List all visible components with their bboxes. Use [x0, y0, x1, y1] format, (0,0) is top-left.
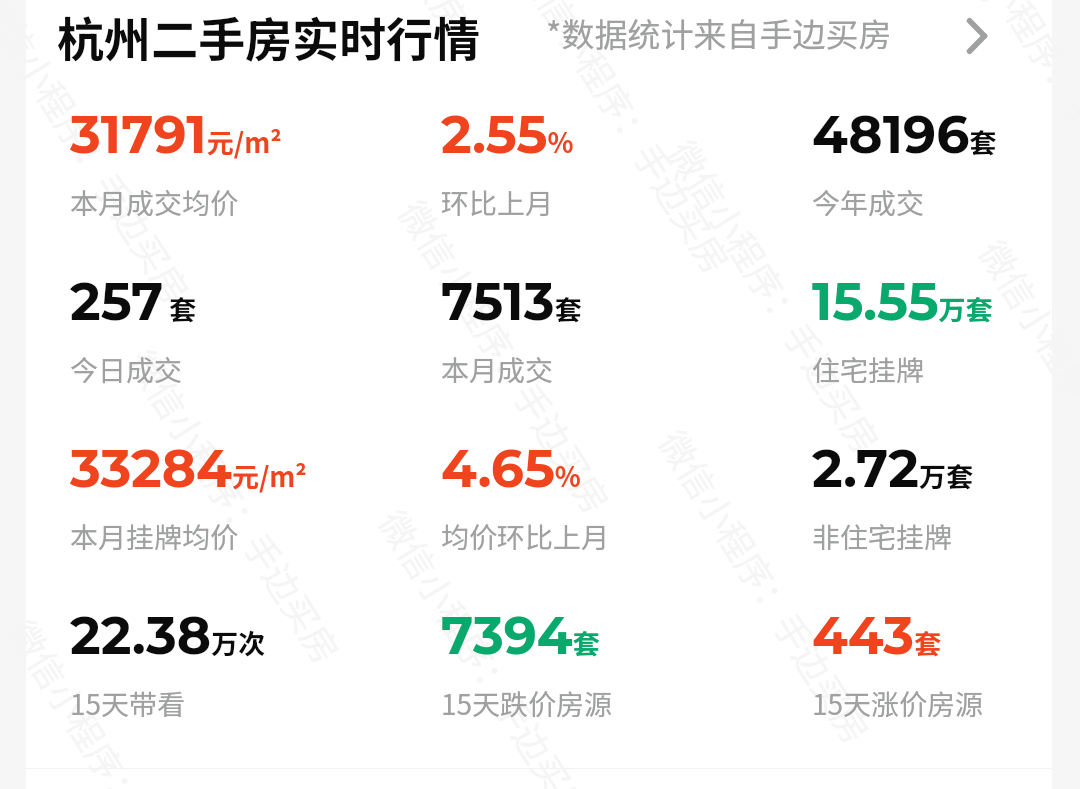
staticText: 15天跌价房源: [441, 683, 613, 724]
staticText: 微信小程序：手边买房: [389, 189, 624, 523]
button[interactable]: 2.55%: [441, 103, 812, 270]
button[interactable]: 查看详情: [946, 5, 1008, 67]
button[interactable]: 257 套: [70, 270, 441, 437]
staticText: 15天带看: [70, 683, 186, 724]
staticText: 今年成交: [812, 182, 925, 223]
button[interactable]: 7513套: [441, 270, 812, 437]
button[interactable]: 2.72万套: [812, 437, 1052, 604]
staticText: 微信小程序：手边买房: [0, 0, 204, 313]
staticText: 2.55%: [441, 103, 574, 166]
staticText: 微信小程序：手边买房: [649, 419, 884, 753]
button[interactable]: 7394套: [441, 604, 812, 771]
button[interactable]: 443套: [812, 604, 1052, 771]
staticText: 48196套: [812, 103, 997, 166]
staticText: 非住宅挂牌: [812, 516, 953, 557]
staticText: 微信小程序：手边买房: [0, 609, 234, 789]
staticText: 今日成交: [70, 349, 183, 390]
staticText: 22.38万次: [70, 604, 266, 667]
staticText: 微信小程序：手边买房: [249, 0, 484, 43]
staticText: 7513套: [441, 270, 582, 333]
button[interactable]: 33284元/m²: [70, 437, 441, 604]
staticText: 微信小程序：手边买房: [119, 339, 354, 673]
staticText: 4.65%: [441, 437, 581, 500]
staticText: 环比上月: [441, 182, 554, 223]
staticText: 443套: [812, 604, 942, 667]
staticText: 本月成交: [441, 349, 554, 390]
staticText: 15天涨价房源: [812, 683, 984, 724]
staticText: 7394套: [441, 604, 600, 667]
staticText: 均价环比上月: [441, 516, 610, 557]
staticText: 住宅挂牌: [812, 349, 925, 390]
button[interactable]: 15.55万套: [812, 270, 1052, 437]
staticText: 微信小程序：手边买房: [659, 129, 894, 463]
staticText: 本月挂牌均价: [70, 516, 239, 557]
button[interactable]: 杭州二手房实时行情: [26, 0, 1052, 72]
staticText: 15.55万套: [812, 270, 993, 333]
staticText: 微信小程序：手边买房: [509, 0, 744, 283]
staticText: *数据统计来自手边买房: [546, 9, 892, 57]
staticText: 33284元/m²: [70, 437, 307, 500]
button[interactable]: 4.65%: [441, 437, 812, 604]
staticText: 31791元/m²: [70, 103, 282, 166]
staticText: 杭州二手房实时行情: [57, 2, 480, 70]
button[interactable]: 22.38万次: [70, 604, 441, 771]
staticText: 257 套: [70, 270, 196, 333]
staticText: 微信小程序：手边买房: [369, 499, 604, 789]
button[interactable]: 31791元/m²: [70, 103, 441, 270]
staticText: 微信小程序：手边买房: [969, 229, 1080, 563]
staticText: 2.72万套: [812, 437, 973, 500]
button[interactable]: 48196套: [812, 103, 1052, 270]
staticText: 本月成交均价: [70, 182, 239, 223]
staticText: 微信小程序：手边买房: [939, 0, 1080, 233]
